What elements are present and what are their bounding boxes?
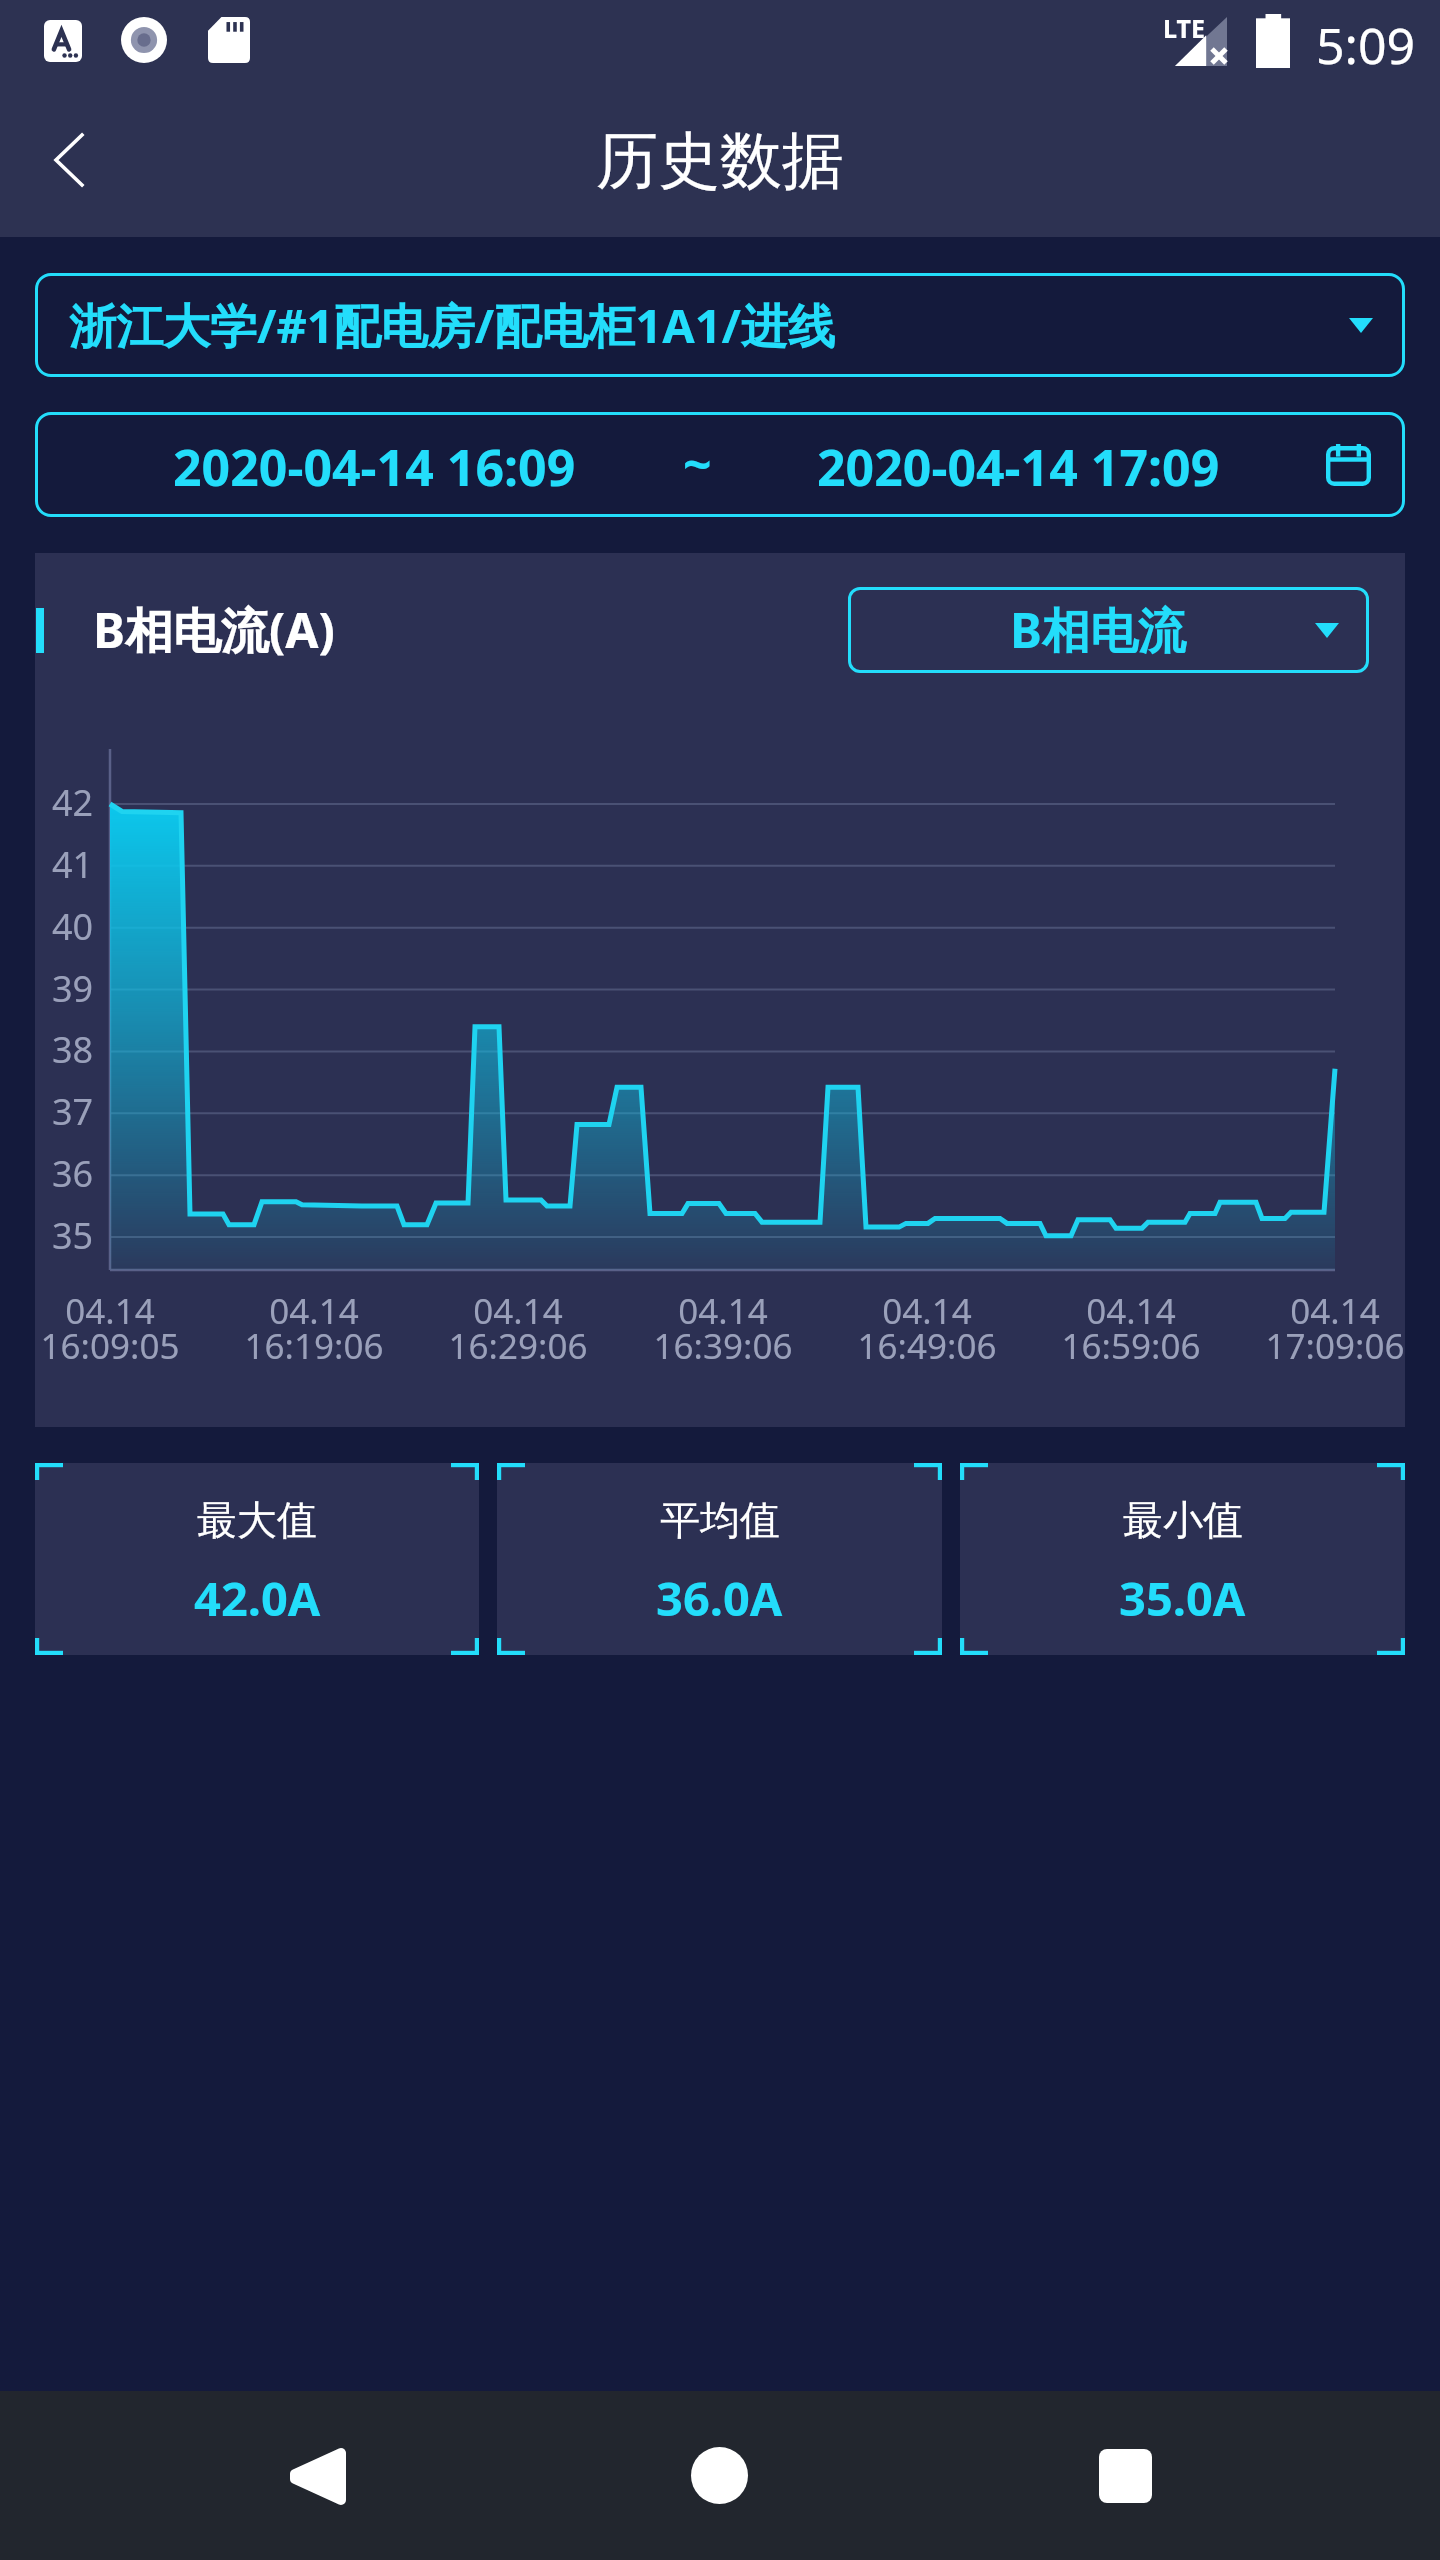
staticText: 最大值 <box>197 1495 317 1545</box>
staticText: 37 <box>52 1087 94 1136</box>
staticText: 16:29:06 <box>388 1322 648 1370</box>
staticText: 16:19:06 <box>184 1322 444 1370</box>
staticText: 04.14 <box>184 1287 444 1335</box>
staticText: 40 <box>52 902 94 951</box>
staticText: 35 <box>52 1211 94 1260</box>
staticText: 04.14 <box>797 1287 1057 1335</box>
staticText: 浙江大学/#1配电房/配电柜1A1/进线 <box>69 293 836 357</box>
staticText: ~ <box>683 430 712 498</box>
button[interactable]: 最大值 <box>35 1463 479 1655</box>
staticText: 16:59:06 <box>1001 1322 1261 1370</box>
button[interactable]: 最小值 <box>960 1463 1405 1655</box>
staticText: 36.0A <box>656 1566 783 1630</box>
button[interactable]: Back <box>236 2391 396 2560</box>
staticText: 最小值 <box>1123 1495 1243 1545</box>
staticText: 2020-04-14 17:09 <box>817 433 1220 501</box>
staticText: 04.14 <box>1205 1287 1440 1335</box>
staticText: LTE <box>1163 11 1205 45</box>
staticText: 41 <box>52 840 94 889</box>
staticText: 42.0A <box>194 1566 321 1630</box>
staticText: 42 <box>52 778 94 827</box>
staticText: B相电流 <box>1010 597 1186 663</box>
button[interactable]: 浙江大学/#1配电房/配电柜1A1/进线 <box>35 273 1405 377</box>
staticText: 5:09 <box>1316 11 1416 79</box>
staticText: 17:09:06 <box>1205 1322 1440 1370</box>
staticText: 39 <box>52 964 94 1013</box>
staticText: 16:09:05 <box>0 1322 240 1370</box>
staticText: 38 <box>52 1025 94 1074</box>
staticText: 16:49:06 <box>797 1322 1057 1370</box>
staticText: 04.14 <box>0 1287 240 1335</box>
staticText: 2020-04-14 16:09 <box>173 433 576 501</box>
button[interactable]: Recents <box>1045 2391 1205 2560</box>
staticText: 04.14 <box>1001 1287 1261 1335</box>
staticText: 35.0A <box>1119 1566 1246 1630</box>
button[interactable]: 平均值 <box>497 1463 942 1655</box>
staticText: B相电流(A) <box>93 597 335 663</box>
staticText: 36 <box>52 1149 94 1198</box>
staticText: 04.14 <box>593 1287 853 1335</box>
button[interactable]: Back <box>27 118 111 202</box>
staticText: 16:39:06 <box>593 1322 853 1370</box>
staticText: 04.14 <box>388 1287 648 1335</box>
staticText: 历史数据 <box>0 122 1440 200</box>
button[interactable]: Home <box>639 2391 799 2560</box>
staticText: 平均值 <box>660 1495 780 1545</box>
button[interactable]: 2020-04-14 16:09 <box>35 412 1405 517</box>
button[interactable]: B相电流 <box>848 587 1369 673</box>
